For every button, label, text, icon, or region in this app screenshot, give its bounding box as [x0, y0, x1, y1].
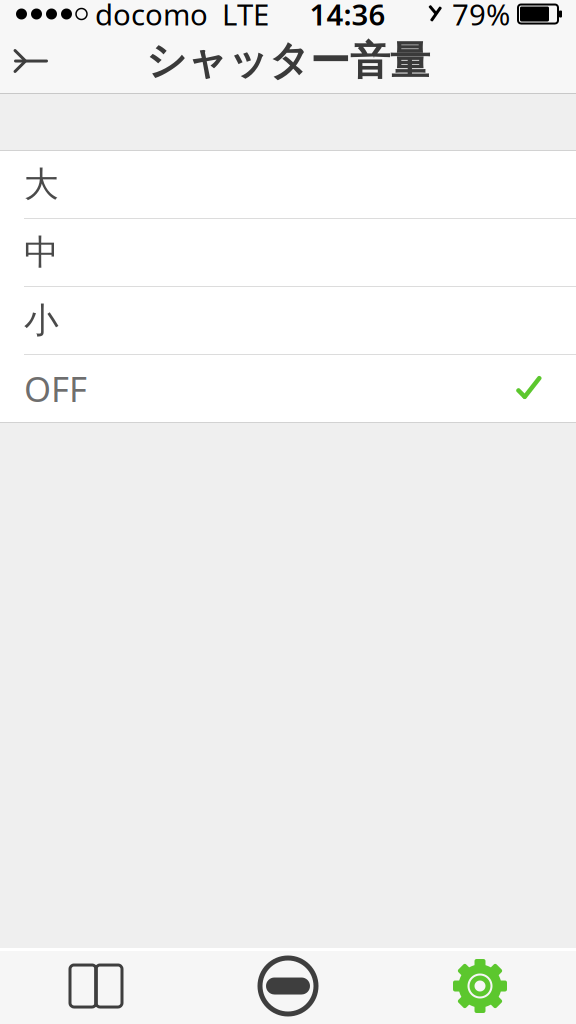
staticText: docomo	[95, 0, 208, 33]
button[interactable]: OFF	[0, 355, 576, 423]
button[interactable]: 設定	[384, 948, 576, 1024]
button[interactable]: 中	[0, 219, 576, 287]
staticText: LTE	[222, 0, 269, 33]
staticText: 中	[24, 231, 59, 274]
button[interactable]: 戻る	[0, 28, 62, 94]
staticText: 小	[24, 299, 59, 342]
staticText: シャッター音量	[146, 36, 430, 85]
button[interactable]: アルバム	[0, 948, 192, 1024]
button[interactable]: 撮影	[192, 948, 384, 1024]
button[interactable]: 大	[0, 151, 576, 219]
button[interactable]: 小	[0, 287, 576, 355]
staticText: OFF	[24, 365, 87, 411]
staticText: 14:36	[309, 0, 385, 33]
staticText: 大	[24, 163, 59, 206]
staticText: 79%	[452, 0, 510, 33]
